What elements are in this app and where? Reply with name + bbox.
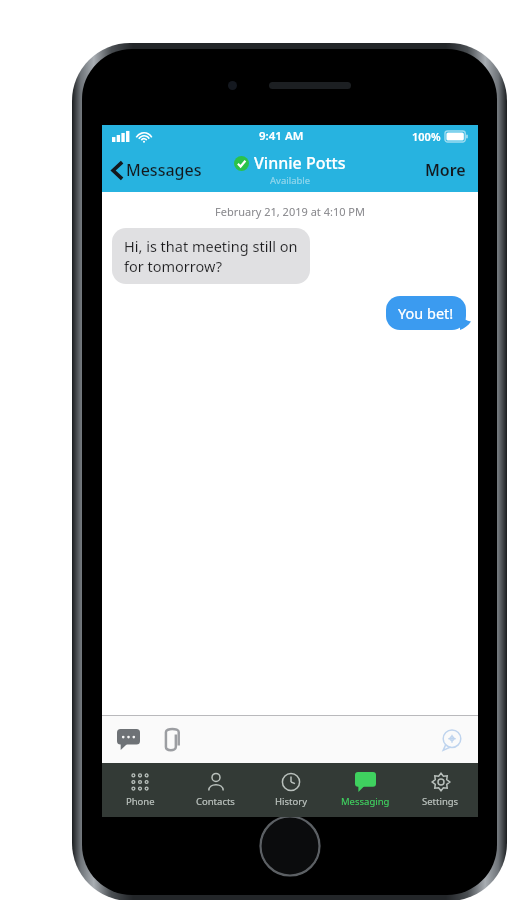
staticText: History (275, 795, 307, 808)
staticText: Messages (126, 159, 202, 181)
button[interactable]: Hi, is that meeting still on for tomorro… (112, 228, 310, 284)
button[interactable]: Home (259, 815, 321, 877)
button[interactable]: Quick messages (114, 726, 143, 753)
button[interactable]: Settings (403, 767, 478, 813)
staticText: You bet! (398, 303, 454, 323)
button[interactable]: Phone (102, 767, 178, 813)
button[interactable]: Contacts (178, 767, 253, 813)
staticText: Messaging (341, 795, 390, 808)
button[interactable]: Messaging (328, 767, 403, 813)
staticText: 9:41 AM (259, 128, 304, 144)
button[interactable]: Messages (109, 155, 205, 185)
staticText: Phone (126, 795, 155, 808)
staticText: Hi, is that meeting still on for tomorro… (124, 236, 298, 276)
staticText: More (425, 159, 466, 181)
staticText: Settings (422, 795, 459, 808)
button[interactable]: Attach file (161, 724, 183, 755)
staticText: Contacts (196, 795, 235, 808)
staticText: Available (270, 174, 311, 187)
button[interactable]: More (421, 155, 470, 185)
button[interactable]: Send message (438, 726, 466, 754)
staticText: February 21, 2019 at 4:10 PM (102, 204, 478, 219)
button[interactable]: Vinnie Potts (228, 152, 352, 187)
staticText: Vinnie Potts (254, 152, 346, 174)
button[interactable]: You bet! (386, 296, 466, 330)
staticText: 100% (412, 129, 441, 144)
button[interactable]: History (253, 767, 328, 813)
